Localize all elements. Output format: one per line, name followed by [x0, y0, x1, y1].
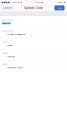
staticText: Update Case	[24, 6, 43, 10]
staticText: Cancel	[2, 6, 12, 10]
staticText: Case Number	[2, 18, 14, 21]
staticText: Priority	[2, 52, 8, 54]
staticText: Open	[7, 44, 12, 47]
button[interactable]: Subject	[0, 60, 67, 72]
staticText: ⌄	[63, 54, 65, 56]
staticText: Case Owner	[2, 29, 14, 32]
button[interactable]: Priority	[0, 49, 67, 60]
button[interactable]: Status	[0, 38, 67, 49]
staticText: Save	[57, 6, 61, 9]
button[interactable]: Save	[54, 5, 67, 10]
staticText: Status	[2, 40, 8, 43]
staticText: Medium	[7, 55, 15, 58]
staticText: Complete issue	[7, 66, 22, 69]
button[interactable]: Case Number	[0, 16, 67, 27]
staticText: Mickey Dunnellon	[7, 33, 25, 36]
staticText: Subject	[2, 63, 8, 65]
staticText: 00001026	[2, 22, 10, 25]
button[interactable]: Cancel	[0, 4, 15, 11]
staticText: 100% ▰	[57, 1, 65, 4]
button[interactable]: Case Owner	[0, 27, 67, 38]
staticText: 9:41 AM	[35, 1, 43, 4]
staticText: ●●●●○ Carrier ◗	[1, 1, 21, 4]
